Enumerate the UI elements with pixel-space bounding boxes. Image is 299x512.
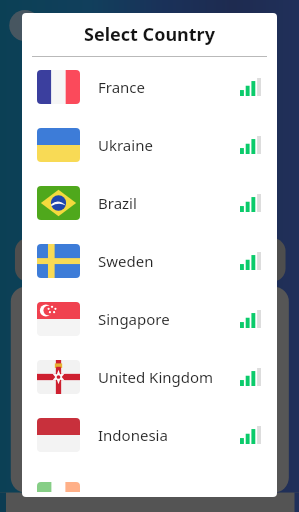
other: Signal strength [240, 194, 261, 212]
staticText: United Kingdom [98, 367, 240, 387]
button[interactable]: France [29, 62, 270, 112]
staticText: Indonesia [98, 425, 240, 445]
staticText: Ukraine [98, 135, 240, 155]
other: Signal strength [240, 426, 261, 444]
staticText: Sweden [98, 251, 240, 271]
button[interactable]: Sweden [29, 236, 270, 286]
other: Signal strength [240, 78, 261, 96]
button[interactable]: United Kingdom [29, 352, 270, 402]
other: Signal strength [240, 310, 261, 328]
other: Signal strength [240, 136, 261, 154]
button[interactable]: Singapore [29, 294, 270, 344]
staticText: Select Country [84, 22, 215, 47]
button[interactable]: Brazil [29, 178, 270, 228]
staticText: Singapore [98, 309, 240, 329]
other: Signal strength [240, 252, 261, 270]
button[interactable]: Indonesia [29, 410, 270, 460]
other: Signal strength [240, 368, 261, 386]
button[interactable]: Ukraine [29, 120, 270, 170]
button[interactable] [29, 468, 270, 492]
staticText: France [98, 77, 240, 97]
staticText: Brazil [98, 193, 240, 213]
